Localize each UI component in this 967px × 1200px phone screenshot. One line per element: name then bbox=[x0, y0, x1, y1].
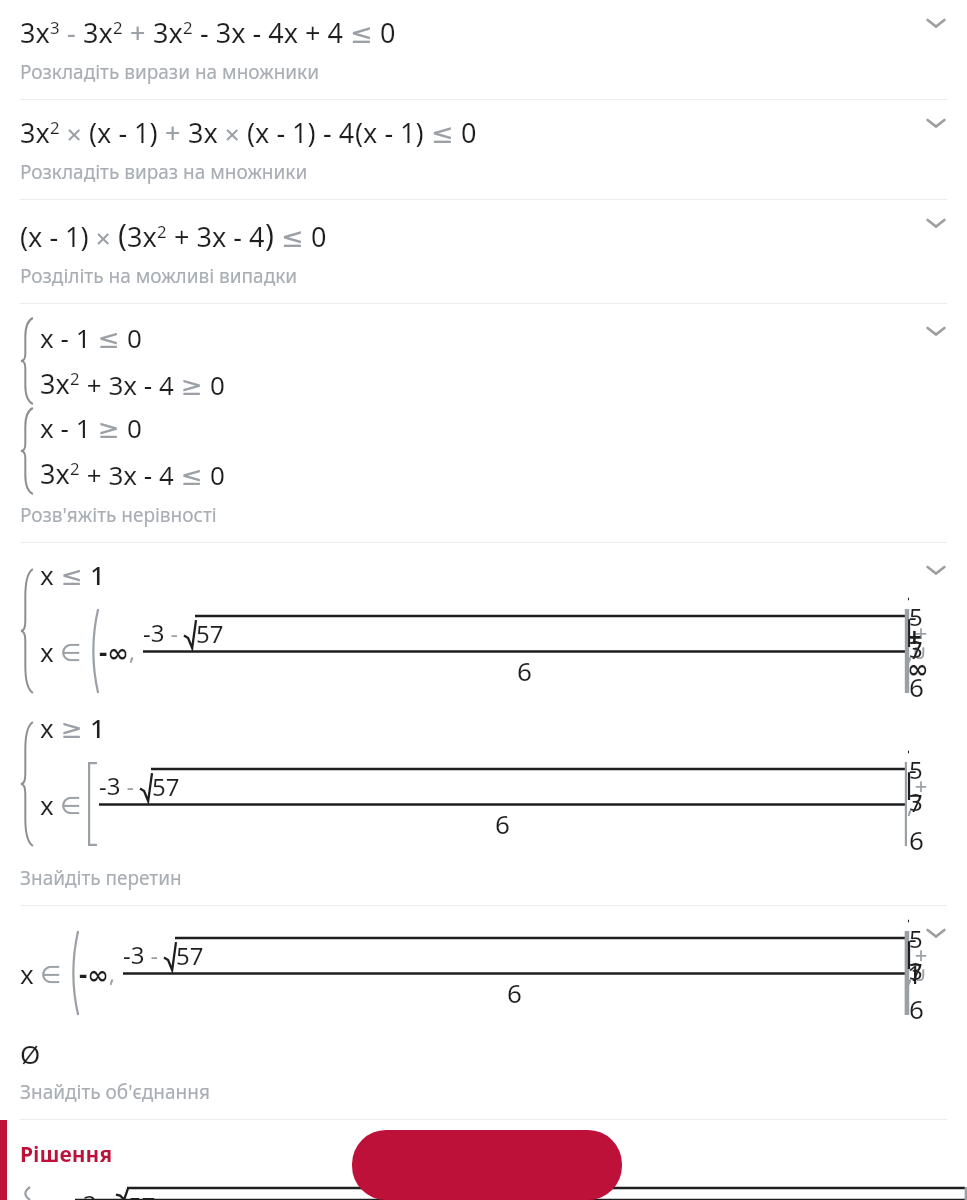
button[interactable]: (x - 1) bbox=[0, 200, 967, 303]
staticText: 3x bbox=[20, 114, 50, 151]
staticText: ≥ bbox=[91, 410, 127, 445]
staticText: × bbox=[89, 220, 118, 255]
staticText: x bbox=[40, 710, 54, 745]
staticText: Знайдіть перетин bbox=[20, 865, 182, 891]
staticText: 0 bbox=[380, 14, 396, 51]
staticText: -3 bbox=[75, 1187, 97, 1200]
staticText: ) bbox=[265, 214, 274, 255]
staticText: x - 1 bbox=[40, 410, 91, 445]
staticText: - bbox=[97, 1187, 116, 1200]
button[interactable]: Рішення bbox=[0, 1120, 967, 1200]
staticText: 3x bbox=[127, 218, 157, 255]
button[interactable]: Expand step bbox=[921, 316, 951, 346]
staticText: 2 bbox=[113, 16, 123, 39]
staticText: -∞ bbox=[79, 956, 109, 991]
staticText: Ø bbox=[20, 1036, 41, 1071]
staticText: ∈ bbox=[54, 788, 88, 821]
staticText: 0 bbox=[210, 457, 225, 492]
staticText: ∈ bbox=[54, 635, 88, 668]
staticText: x bbox=[20, 956, 34, 991]
staticText: 57 bbox=[196, 617, 224, 650]
staticText: 3x bbox=[188, 114, 218, 151]
staticText: ≤ bbox=[91, 320, 127, 355]
staticText: × bbox=[60, 116, 89, 151]
staticText: + bbox=[123, 14, 153, 51]
staticText: ≤ bbox=[174, 457, 210, 492]
staticText: + 3x - 4 bbox=[80, 457, 174, 492]
staticText: ≥ bbox=[54, 710, 90, 745]
staticText: Розкладіть вирази на множники bbox=[20, 59, 319, 85]
staticText: ≤ bbox=[274, 218, 311, 255]
staticText: (x - 1) bbox=[247, 114, 316, 151]
staticText: Розділіть на можливі випадки bbox=[20, 263, 298, 289]
staticText: ( bbox=[118, 214, 127, 255]
button[interactable]: x bbox=[0, 543, 967, 905]
button[interactable]: Expand step bbox=[921, 108, 951, 138]
staticText: x bbox=[40, 557, 54, 592]
staticText: - bbox=[145, 940, 164, 970]
staticText: x bbox=[40, 787, 54, 822]
button[interactable]: Expand step bbox=[921, 918, 951, 948]
staticText: 3 bbox=[50, 16, 60, 39]
staticText: x bbox=[40, 634, 54, 669]
staticText: 2 bbox=[50, 116, 60, 139]
staticText: 2 bbox=[70, 367, 80, 390]
staticText: × bbox=[218, 116, 247, 151]
staticText: 3x bbox=[40, 455, 70, 492]
staticText: ≤ bbox=[54, 557, 90, 592]
staticText: 3x bbox=[153, 14, 183, 51]
staticText: Розв'яжіть нерівності bbox=[20, 502, 217, 528]
staticText: (x - 1) bbox=[355, 114, 424, 151]
staticText: ∈ bbox=[34, 957, 68, 990]
staticText: 0 bbox=[311, 218, 327, 255]
staticText: 1 bbox=[90, 557, 105, 592]
staticText: , bbox=[109, 958, 121, 988]
staticText: - 3x - 4x + 4 bbox=[193, 14, 343, 51]
staticText: 3x bbox=[40, 365, 70, 402]
staticText: 0 bbox=[210, 367, 225, 402]
staticText: x - 1 bbox=[40, 320, 91, 355]
staticText: 0 bbox=[127, 320, 142, 355]
staticText: 2 bbox=[183, 16, 193, 39]
button[interactable]: Expand step bbox=[921, 208, 951, 238]
staticText: , bbox=[129, 636, 141, 666]
staticText: - bbox=[165, 618, 184, 648]
staticText: 57 bbox=[176, 939, 204, 972]
button[interactable]: Continue bbox=[352, 1130, 622, 1200]
staticText: Рішення bbox=[20, 1140, 113, 1169]
staticText: + 3x - 4 bbox=[80, 367, 174, 402]
staticText: -3 bbox=[143, 616, 165, 649]
staticText: 6 bbox=[495, 806, 510, 841]
button[interactable]: x - 1 bbox=[0, 304, 967, 542]
staticText: (x - 1) bbox=[89, 114, 158, 151]
button[interactable]: Expand step bbox=[921, 8, 951, 38]
button[interactable]: x bbox=[0, 906, 967, 1119]
button[interactable]: 3x bbox=[0, 100, 967, 199]
staticText: 6 bbox=[507, 975, 522, 1010]
staticText: -3 bbox=[123, 938, 145, 971]
staticText: -∞ bbox=[99, 634, 129, 669]
staticText: 6 bbox=[517, 653, 532, 688]
staticText: 3x bbox=[83, 14, 113, 51]
staticText: 3x bbox=[20, 14, 50, 51]
staticText: (x - 1) bbox=[20, 218, 89, 255]
staticText: ≥ bbox=[174, 367, 210, 402]
staticText: 1 bbox=[90, 710, 105, 745]
staticText: 57 bbox=[128, 1189, 156, 1200]
button[interactable]: 3x bbox=[0, 0, 967, 99]
staticText: + bbox=[158, 114, 188, 151]
button[interactable]: Expand step bbox=[921, 555, 951, 585]
staticText: - 4 bbox=[316, 114, 355, 151]
staticText: ≤ bbox=[424, 114, 461, 151]
staticText: - bbox=[60, 14, 83, 51]
staticText: 57 bbox=[152, 770, 180, 803]
staticText: 2 bbox=[70, 457, 80, 480]
staticText: ≤ bbox=[343, 14, 380, 51]
staticText: Знайдіть об'єднання bbox=[20, 1079, 210, 1105]
staticText: 0 bbox=[461, 114, 477, 151]
staticText: 2 bbox=[157, 220, 167, 243]
staticText: - bbox=[121, 771, 140, 801]
staticText: + 3x - 4 bbox=[167, 218, 265, 255]
